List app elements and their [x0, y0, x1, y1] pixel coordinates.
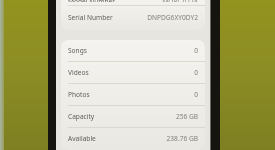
staticText: 238.76 GB — [166, 134, 198, 143]
button[interactable]: Model Number — [61, 0, 205, 5]
staticText: 0 — [194, 90, 198, 99]
button[interactable]: Songs — [61, 40, 205, 62]
staticText: DNPDG6XY0DY2 — [147, 13, 198, 22]
staticText: Model Number — [68, 0, 115, 2]
button[interactable]: Videos — [61, 62, 205, 84]
staticText: 0 — [194, 46, 198, 55]
staticText: Songs — [68, 46, 87, 55]
button[interactable]: Serial Number — [61, 6, 205, 29]
staticText: MQ8L2LL/A — [162, 0, 198, 2]
staticText: 256 GB — [175, 112, 198, 121]
staticText: Videos — [68, 68, 89, 77]
staticText: Photos — [68, 90, 90, 99]
button[interactable]: Photos — [61, 84, 205, 106]
button[interactable]: Available — [61, 128, 205, 149]
button[interactable]: Capacity — [61, 106, 205, 128]
staticText: Available — [68, 134, 96, 143]
staticText: Serial Number — [68, 13, 113, 22]
staticText: Capacity — [68, 112, 95, 121]
staticText: 0 — [194, 68, 198, 77]
